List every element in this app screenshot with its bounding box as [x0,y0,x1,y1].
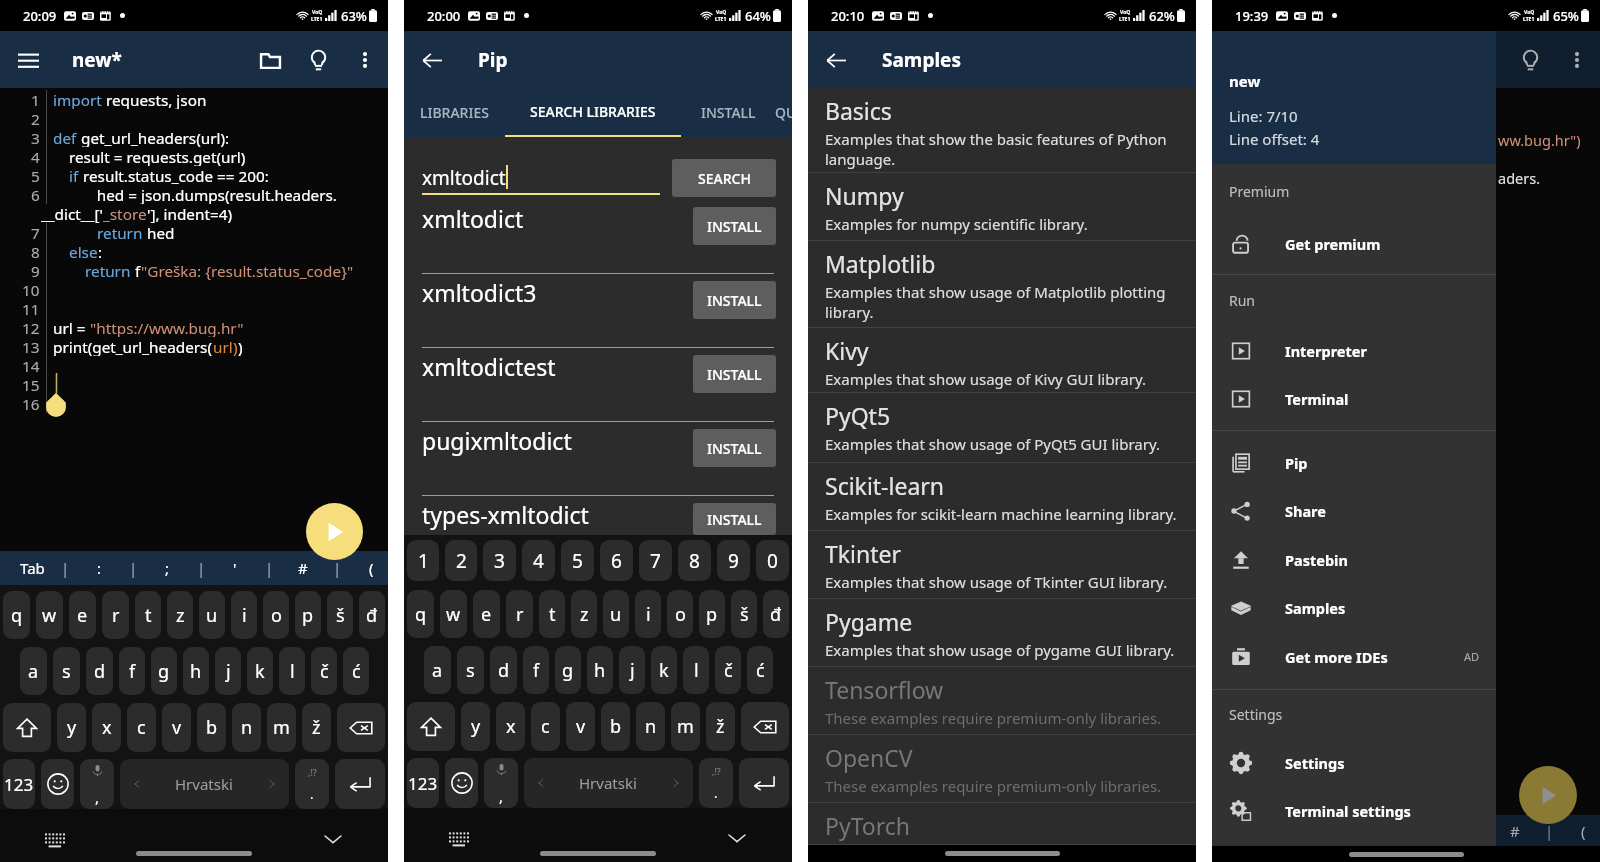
button[interactable]: INSTALL [693,503,776,535]
button[interactable]: o [263,591,289,639]
button[interactable]: z [571,590,597,638]
button[interactable]: Back [808,32,864,88]
button[interactable]: SEARCH LIBRARIES [505,88,681,137]
button[interactable]: Pip [1212,438,1496,487]
button[interactable]: ž [706,702,735,751]
button[interactable]: | [1396,815,1430,846]
button[interactable]: Settings [1212,738,1496,787]
button[interactable]: ( [1566,815,1600,846]
button[interactable]: i [231,591,257,639]
button[interactable]: | [184,551,218,585]
button[interactable]: p [699,590,725,638]
button[interactable]: Run [306,503,363,560]
button[interactable]: Share [1212,487,1496,535]
button[interactable]: PyTorch [808,803,1196,845]
button[interactable]: Shift [407,702,455,751]
button[interactable]: PyQt5 [808,393,1196,463]
button[interactable]: Keyboard layout [444,823,474,853]
button[interactable]: Hint [1506,36,1554,84]
button[interactable]: Terminal settings [1212,787,1496,835]
button[interactable]: 0 [756,540,789,581]
button[interactable]: ,!? [699,758,733,808]
button[interactable]: n [636,702,665,751]
button[interactable]: : [82,551,116,585]
button[interactable]: m [267,703,296,752]
button[interactable]: OpenCV [808,735,1196,803]
button[interactable]: č [715,646,741,694]
button[interactable]: Menu [0,32,56,88]
button[interactable]: Voice input [484,758,518,808]
button[interactable]: Back [404,32,460,88]
button[interactable]: q [3,591,30,639]
button[interactable]: Tkinter [808,531,1196,599]
button[interactable]: Enter [335,759,385,809]
button[interactable]: 3 [483,540,516,581]
button[interactable]: l [279,647,305,695]
button[interactable]: 7 [639,540,672,581]
button[interactable]: r [102,591,129,639]
button[interactable]: Interpreter [1212,326,1496,375]
button[interactable]: g [555,646,581,694]
button[interactable]: Hrvatski [120,759,289,809]
button[interactable]: # [286,551,320,585]
button[interactable]: | [1464,815,1498,846]
button[interactable]: Tab [16,551,49,585]
button[interactable]: b [601,702,630,751]
button[interactable]: | [320,551,354,585]
button[interactable]: INSTALL [681,88,775,137]
button[interactable]: QUICK [775,88,792,137]
button[interactable]: w [440,590,467,638]
button[interactable]: Terminal [1212,375,1496,423]
button[interactable]: t [135,591,161,639]
button[interactable]: Get more IDEs [1212,632,1496,681]
button[interactable]: g [151,647,177,695]
button[interactable]: v [566,702,595,751]
button[interactable]: 8 [678,540,711,581]
button[interactable]: u [199,591,225,639]
button[interactable]: k [247,647,273,695]
button[interactable]: 5 [561,540,594,581]
button[interactable]: Kivy [808,328,1196,393]
button[interactable]: More options [342,37,388,83]
button[interactable]: | [252,551,286,585]
button[interactable]: m [671,702,700,751]
button[interactable]: 123 [3,759,35,809]
button[interactable]: l [683,646,709,694]
button[interactable]: a [424,646,451,694]
button[interactable]: Pygame [808,599,1196,667]
button[interactable]: 1 [407,540,439,581]
button[interactable]: More options [1554,37,1600,83]
button[interactable]: d [490,646,517,694]
button[interactable]: š [327,591,353,639]
button[interactable]: c [531,702,560,751]
button[interactable]: s [53,647,80,695]
button[interactable]: č [311,647,337,695]
button[interactable]: pugixmltodict [404,422,792,495]
button[interactable]: ć [747,646,773,694]
button[interactable]: i [635,590,661,638]
button[interactable]: Voice input [80,759,114,809]
button[interactable]: Backspace [741,702,789,751]
button[interactable]: Emoji [445,758,478,808]
button[interactable]: 9 [717,540,750,581]
button[interactable]: a [20,647,47,695]
button[interactable]: | [1532,815,1566,846]
button[interactable]: Run [1519,766,1577,824]
button[interactable]: j [619,646,645,694]
button[interactable]: Open folder [246,36,294,84]
button[interactable]: Scikit-learn [808,463,1196,531]
button[interactable]: Keyboard layout [40,824,70,854]
button[interactable]: d [86,647,113,695]
button[interactable]: u [603,590,629,638]
button[interactable]: s [457,646,484,694]
button[interactable]: Hide keyboard [722,823,752,853]
button[interactable]: INSTALL [693,429,776,467]
button[interactable]: xmltodict3 [404,274,792,347]
button[interactable]: Pastebin [1212,535,1496,584]
button[interactable]: Hide keyboard [318,824,348,854]
button[interactable]: f [119,647,145,695]
button[interactable]: 123 [407,758,439,808]
button[interactable]: ; [1362,815,1396,846]
button[interactable]: x [496,702,525,751]
